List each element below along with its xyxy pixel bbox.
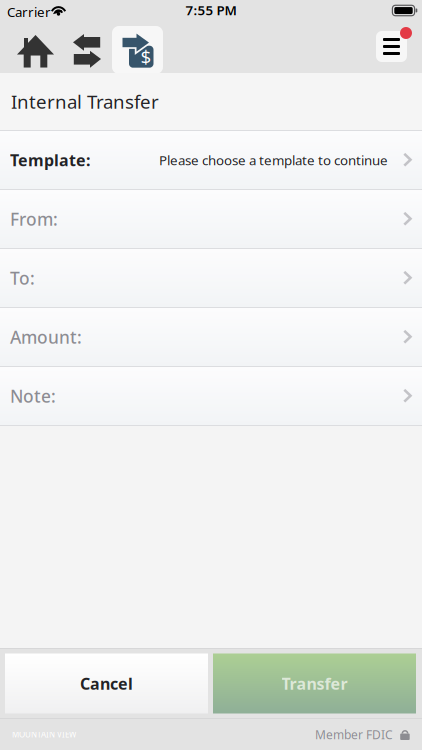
button[interactable]: Transfer	[213, 653, 416, 713]
button[interactable]: Note:	[0, 367, 422, 426]
button[interactable]: To:	[0, 249, 422, 308]
button[interactable]: Internal Transfer	[112, 22, 163, 73]
staticText: Transfer	[281, 673, 347, 694]
staticText: Internal Transfer	[11, 89, 159, 114]
staticText: Carrier	[7, 3, 51, 21]
staticText: $	[140, 44, 151, 69]
staticText: Please choose a template to continue	[159, 151, 388, 169]
button[interactable]: Transfers	[54, 22, 104, 73]
staticText: MOUNTAIN VIEW	[12, 729, 76, 740]
staticText: Template:	[10, 149, 90, 171]
button[interactable]: Home	[0, 22, 54, 73]
button[interactable]: Template:	[0, 131, 422, 190]
staticText: To:	[10, 266, 35, 289]
button[interactable]: From:	[0, 190, 422, 249]
button[interactable]: Amount:	[0, 308, 422, 367]
staticText: Cancel	[80, 673, 133, 694]
staticText: 7:55 PM	[185, 1, 236, 19]
staticText: From:	[10, 207, 58, 230]
button[interactable]: Menu	[374, 22, 418, 73]
button[interactable]: Cancel	[5, 653, 208, 713]
staticText: Amount:	[10, 325, 82, 348]
staticText: Member FDIC	[315, 726, 393, 742]
staticText: Note:	[10, 384, 56, 407]
